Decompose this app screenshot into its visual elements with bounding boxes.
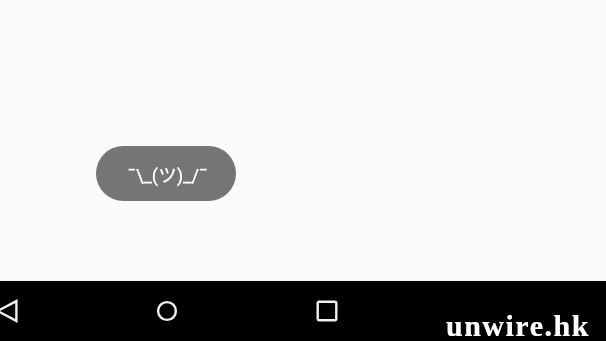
button[interactable]: Home — [147, 291, 187, 331]
button[interactable]: ¯\_(ツ)_/¯ — [96, 146, 236, 201]
button[interactable]: Back — [0, 291, 27, 331]
button[interactable]: Recent apps — [307, 291, 347, 331]
staticText: unwire.hk — [446, 309, 590, 341]
staticText: ¯\_(ツ)_/¯ — [127, 161, 208, 188]
